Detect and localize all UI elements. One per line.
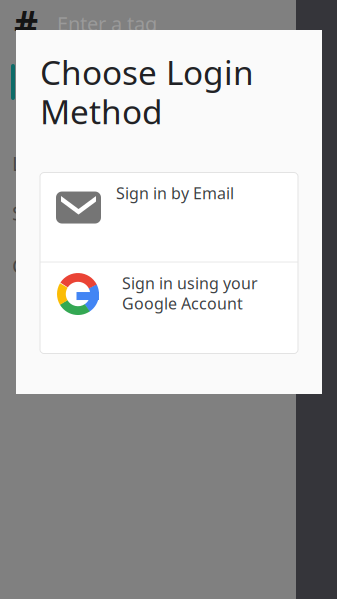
staticText: Credits [12,252,78,279]
staticText: Sign in by Email [116,182,234,204]
staticText: Library [12,150,76,177]
staticText: Sign in using your [122,272,258,294]
staticText: Choose Login [40,50,254,94]
button[interactable]: Sign in using your [40,262,298,353]
staticText: Enter a tag [57,10,157,37]
staticText: Method [40,89,163,134]
staticText: Google Account [122,293,243,314]
button[interactable]: Sign in by Email [40,172,298,261]
staticText: Settings [12,200,87,226]
staticText: # [14,0,38,48]
